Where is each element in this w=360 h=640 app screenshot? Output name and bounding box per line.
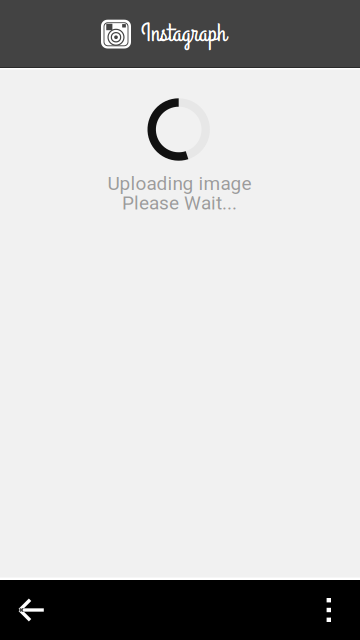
staticText: Uploading image (107, 172, 251, 195)
staticText: Please Wait... (122, 192, 237, 214)
staticText: Instagraph (141, 16, 226, 51)
button[interactable]: More options (301, 582, 357, 638)
button[interactable]: Back (4, 582, 60, 638)
